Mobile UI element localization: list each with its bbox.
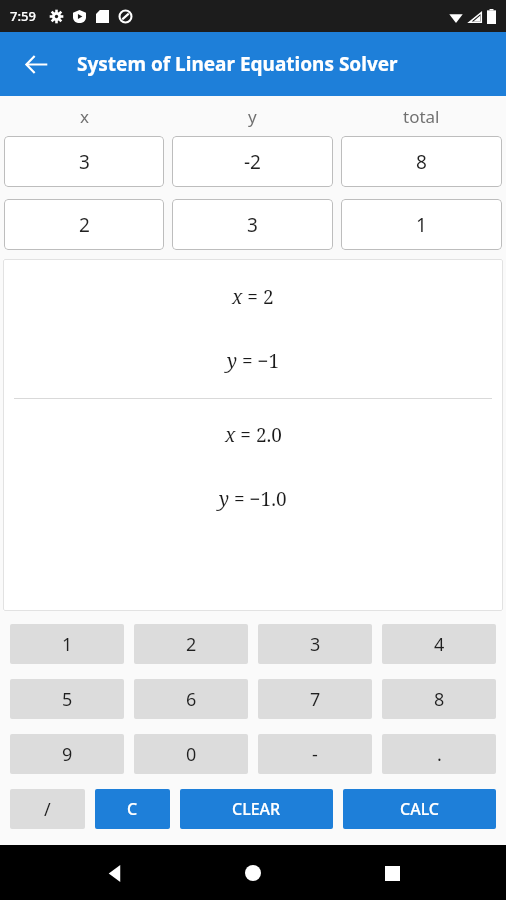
staticText: 3 [310, 632, 321, 657]
button[interactable]: 1 [10, 624, 124, 664]
staticText: 0 [186, 742, 197, 767]
button[interactable]: 3 [4, 136, 164, 187]
button[interactable]: 3 [258, 624, 372, 664]
button[interactable]: 2 [4, 199, 164, 250]
staticText: CALC [400, 798, 440, 820]
staticText: y = −1 [227, 348, 280, 374]
button[interactable]: C [95, 789, 170, 829]
button[interactable]: CALC [343, 789, 496, 829]
staticText: 2 [79, 212, 90, 238]
staticText: 4 [434, 632, 445, 657]
staticText: C [127, 798, 138, 820]
staticText: / [44, 797, 51, 822]
staticText: 3 [79, 149, 90, 175]
staticText: y [248, 105, 257, 128]
staticText: 6 [186, 687, 197, 712]
button[interactable]: Recent apps [368, 849, 416, 897]
button[interactable]: 8 [382, 679, 496, 719]
button[interactable]: 9 [10, 734, 124, 774]
staticText: . [437, 742, 442, 767]
button[interactable]: 5 [10, 679, 124, 719]
staticText: y = −1.0 [219, 486, 287, 512]
button[interactable]: 2 [134, 624, 248, 664]
button[interactable]: 8 [341, 136, 502, 187]
staticText: 3 [247, 212, 258, 238]
button[interactable]: -2 [172, 136, 333, 187]
staticText: 7:59 [10, 7, 36, 25]
button[interactable]: 6 [134, 679, 248, 719]
button[interactable]: 7 [258, 679, 372, 719]
button[interactable]: 4 [382, 624, 496, 664]
staticText: -2 [244, 149, 261, 175]
staticText: 2 [186, 632, 197, 657]
button[interactable]: CLEAR [180, 789, 333, 829]
staticText: 9 [62, 742, 73, 767]
button[interactable]: . [382, 734, 496, 774]
button[interactable]: 3 [172, 199, 333, 250]
button[interactable]: Home [229, 849, 277, 897]
button[interactable]: Back [91, 849, 139, 897]
staticText: CLEAR [232, 798, 281, 820]
staticText: x = 2 [232, 284, 274, 310]
staticText: 8 [434, 687, 445, 712]
staticText: total [403, 105, 440, 128]
staticText: 8 [416, 149, 427, 175]
staticText: x [80, 105, 89, 128]
staticText: 1 [416, 212, 427, 238]
staticText: 7 [310, 687, 321, 712]
staticText: 5 [62, 687, 73, 712]
button[interactable]: 0 [134, 734, 248, 774]
staticText: - [312, 742, 318, 767]
staticText: 1 [62, 632, 73, 657]
button[interactable]: - [258, 734, 372, 774]
button[interactable]: Back [14, 42, 58, 86]
staticText: System of Linear Equations Solver [77, 51, 398, 77]
button[interactable]: 1 [341, 199, 502, 250]
staticText: x = 2.0 [225, 422, 282, 448]
button[interactable]: / [10, 789, 85, 829]
